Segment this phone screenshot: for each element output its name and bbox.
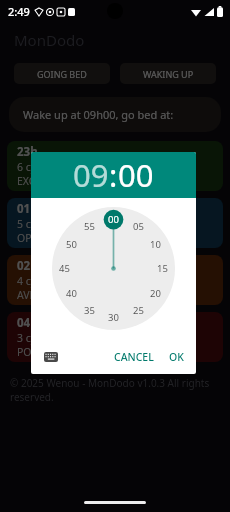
staticText: AVERAGE: Acceptable. xyxy=(17,288,125,302)
staticText: 55 xyxy=(84,220,95,233)
staticText: 3 cycles of 90 minutes. xyxy=(17,331,129,345)
staticText: WAKING UP xyxy=(143,68,194,80)
staticText: 40 xyxy=(66,287,77,300)
staticText: © 2025 Wenou - MonDodo v1.0.3 All rights xyxy=(10,376,210,390)
staticText: OK xyxy=(169,350,184,364)
staticText: 00 xyxy=(108,213,119,226)
button[interactable]: Wake up at 09h00, go bed at: xyxy=(9,97,221,132)
staticText: 00 xyxy=(118,154,154,196)
staticText: 2:49 xyxy=(8,4,30,19)
staticText: GOING BED xyxy=(37,68,87,80)
button[interactable]: 01H xyxy=(7,198,223,248)
staticText: 30 xyxy=(108,311,119,324)
button[interactable]: 00 xyxy=(118,154,154,196)
staticText: 05 xyxy=(133,220,144,233)
staticText: 10 xyxy=(150,238,161,251)
staticText: 25 xyxy=(133,304,144,317)
button[interactable]: 23h xyxy=(7,141,223,191)
staticText: reserved. xyxy=(10,390,54,404)
button[interactable]: GOING BED xyxy=(14,63,110,84)
staticText: MonDodo xyxy=(14,30,85,50)
button[interactable]: 09 xyxy=(73,154,109,196)
button[interactable]: CANCEL xyxy=(111,345,157,369)
staticText: Wake up at 09h00, go bed at: xyxy=(23,107,174,122)
button[interactable]: Switch to keyboard input xyxy=(40,346,62,368)
button[interactable]: WAKING UP xyxy=(120,63,216,84)
staticText: 5 cycles of 90 minutes. xyxy=(17,217,129,231)
button[interactable]: 04h xyxy=(7,312,223,362)
button[interactable]: 02h xyxy=(7,255,223,305)
button[interactable]: OK xyxy=(166,345,187,369)
staticText: 20 xyxy=(150,287,161,300)
staticText: 4 cycles of 90 minutes. xyxy=(17,274,129,288)
staticText: 04h xyxy=(17,315,38,331)
staticText: 09 xyxy=(73,154,109,196)
staticText: 15 xyxy=(157,262,168,275)
staticText: 35 xyxy=(84,304,95,317)
staticText: OPTIMAL: Very good. xyxy=(17,231,122,245)
staticText: 50 xyxy=(66,238,77,251)
staticText: 01H xyxy=(17,201,39,217)
staticText: : xyxy=(109,154,118,196)
staticText: POOR: Compromised health. xyxy=(17,345,159,359)
staticText: CANCEL xyxy=(114,350,154,364)
staticText: 02h xyxy=(17,258,38,274)
staticText: 45 xyxy=(59,262,70,275)
staticText: EXCELLENT: Ideal sleep. xyxy=(17,174,134,188)
staticText: 23h xyxy=(17,144,38,160)
staticText: 6 cycles of 90 minutes. xyxy=(17,160,129,174)
